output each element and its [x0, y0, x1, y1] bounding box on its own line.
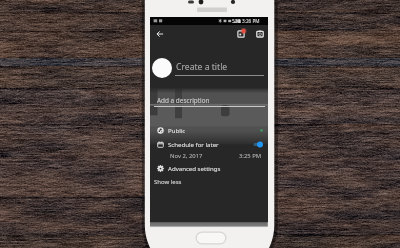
staticText: 53% [232, 18, 242, 24]
staticText: Schedule for later [168, 140, 219, 148]
button[interactable]: Create a title [175, 61, 264, 77]
button[interactable]: Public [150, 123, 268, 137]
button[interactable]: Add photos [235, 28, 247, 40]
staticText: Add a description [157, 96, 210, 105]
button[interactable]: Advanced settings [150, 161, 268, 175]
button[interactable]: Schedule for later [150, 137, 268, 151]
staticText: Nov 2, 2017 [170, 152, 203, 160]
staticText: 3:25 PM [239, 152, 262, 160]
staticText: Public [168, 126, 186, 134]
button[interactable]: Nov 2, 2017 [150, 149, 268, 162]
button[interactable]: Camera [254, 28, 266, 40]
staticText: Create a title [176, 61, 228, 73]
staticText: Advanced settings [168, 164, 221, 172]
button[interactable]: Show less [150, 175, 268, 188]
staticText: 3:26 PM [242, 18, 260, 24]
button[interactable]: Add a description [154, 96, 265, 110]
button[interactable]: Back [154, 28, 166, 40]
staticText: Show less [154, 178, 182, 186]
button[interactable]: Account [152, 58, 172, 78]
